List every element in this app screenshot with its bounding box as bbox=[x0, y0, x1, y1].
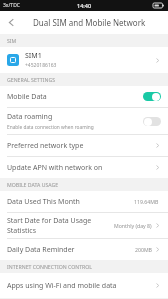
staticText: Daily Data Reminder bbox=[7, 245, 75, 255]
staticText: MOBILE DATA USAGE bbox=[7, 181, 59, 188]
button[interactable]: Data Used This Month bbox=[0, 191, 168, 212]
staticText: 119.64MB bbox=[134, 198, 159, 205]
staticText: Dual SIM and Mobile Network bbox=[33, 17, 146, 28]
staticText: SIM bbox=[7, 37, 17, 44]
staticText: Data roaming bbox=[7, 112, 53, 122]
staticText: Preferred network type bbox=[7, 141, 84, 151]
staticText: Update APN with network on bbox=[7, 163, 103, 173]
staticText: INTERNET CONNECTION CONTROL bbox=[7, 263, 93, 270]
staticText: GENERAL SETTINGS bbox=[7, 76, 56, 83]
staticText: Mobile Data bbox=[7, 92, 47, 102]
button[interactable]: Toggle bbox=[143, 92, 161, 101]
button[interactable]: Back bbox=[0, 11, 23, 34]
staticText: 3x/TDC bbox=[3, 2, 20, 9]
button[interactable]: Data roaming bbox=[0, 108, 168, 134]
button[interactable]: Start Date for Data Usage Statistics bbox=[0, 213, 168, 238]
staticText: Start Date for Data Usage Statistics bbox=[7, 216, 114, 236]
staticText: 200MB bbox=[135, 246, 152, 253]
staticText: Data Used This Month bbox=[7, 197, 80, 207]
button[interactable]: Toggle bbox=[143, 117, 161, 126]
button[interactable]: Mobile Data bbox=[0, 86, 168, 107]
button[interactable]: Update APN with network on bbox=[0, 157, 168, 178]
button[interactable]: Preferred network type bbox=[0, 135, 168, 156]
button[interactable]: SIM1 bbox=[0, 47, 168, 73]
button[interactable]: Apps using Wi-Fi and mobile data bbox=[0, 273, 168, 298]
staticText: Apps using Wi-Fi and mobile data bbox=[7, 281, 117, 291]
button[interactable]: Daily Data Reminder bbox=[0, 239, 168, 260]
staticText: SIM1 bbox=[25, 51, 42, 61]
staticText: 14:40 bbox=[77, 2, 92, 9]
staticText: Enable data connection when roaming bbox=[7, 124, 94, 131]
staticText: Monthly (day 8) bbox=[114, 222, 152, 229]
staticText: +4520186163 bbox=[25, 62, 57, 69]
